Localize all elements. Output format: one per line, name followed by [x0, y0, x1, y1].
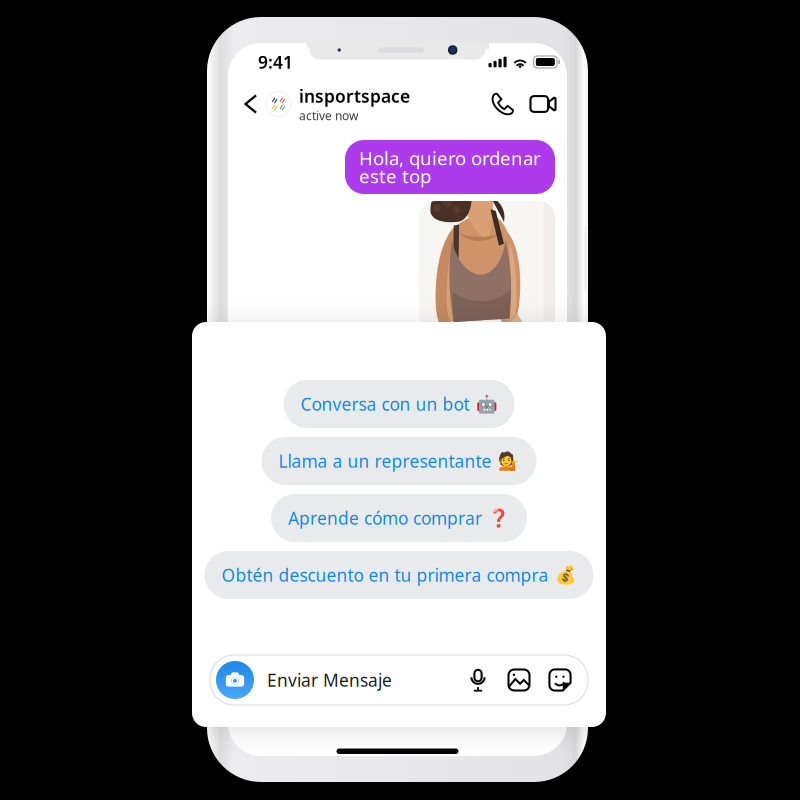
- button[interactable]: Aprende cómo comprar: [271, 494, 527, 542]
- button[interactable]: Obtén descuento en tu primera compra: [204, 551, 593, 599]
- staticText: Conversa con un bot: [300, 392, 469, 415]
- button[interactable]: Photo: [490, 668, 531, 692]
- staticText: 💰: [554, 565, 576, 585]
- button[interactable]: Camera: [216, 661, 254, 699]
- button[interactable]: Back: [238, 86, 264, 122]
- staticText: este top: [359, 164, 431, 188]
- button[interactable]: Video call: [515, 90, 557, 117]
- staticText: active now: [299, 107, 358, 123]
- staticText: ❓: [488, 508, 510, 528]
- staticText: 💁: [497, 451, 519, 471]
- staticText: 9:41: [258, 50, 293, 73]
- button[interactable]: Llama a un representante: [261, 437, 536, 485]
- staticText: Obtén descuento en tu primera compra: [221, 564, 548, 587]
- button[interactable]: Voice message: [466, 668, 490, 692]
- button[interactable]: Audio call: [490, 91, 515, 116]
- staticText: Aprende cómo comprar: [288, 506, 482, 529]
- staticText: Llama a un representante: [278, 449, 491, 472]
- button[interactable]: Conversa con un bot: [283, 380, 514, 428]
- staticText: Enviar Mensaje: [267, 668, 392, 691]
- button[interactable]: Sticker: [531, 668, 572, 692]
- staticText: 🤖: [475, 394, 497, 414]
- staticText: Hola, quiero ordenar: [359, 146, 541, 170]
- staticText: insportspace: [299, 84, 410, 107]
